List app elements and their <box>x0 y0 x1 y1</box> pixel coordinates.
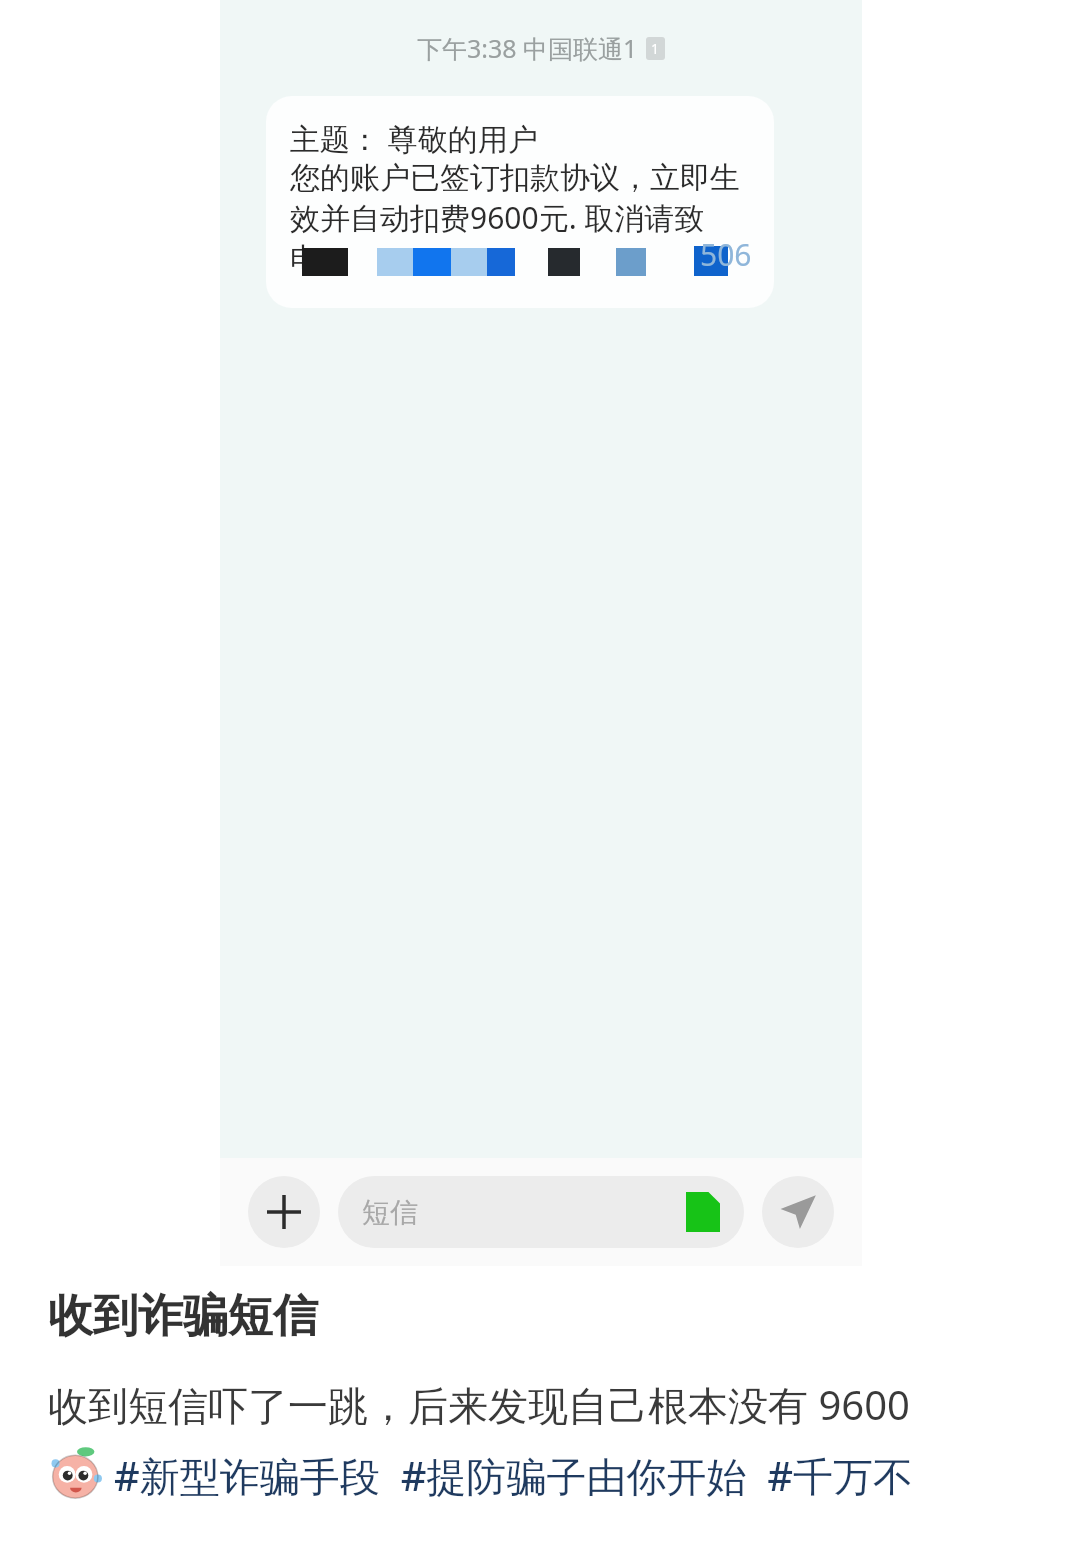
staticText: 506 <box>700 234 752 275</box>
button[interactable]: Send <box>762 1176 834 1248</box>
staticText: 短信 <box>362 1195 418 1230</box>
staticText: 收到诈骗短信 <box>48 1288 318 1345</box>
staticText: 主题： 尊敬的用户 <box>290 118 538 159</box>
staticText: 效并自动扣费9600元. 取消请致 <box>290 197 705 238</box>
button[interactable]: 短信 <box>338 1176 744 1248</box>
button[interactable]: Add attachment <box>248 1176 320 1248</box>
staticText: 收到短信吓了一跳，后来发现自己根本没有 9600 <box>48 1377 910 1432</box>
button[interactable]: 主题： 尊敬的用户 <box>266 96 774 308</box>
staticText: 下午3:38 中国联通1 <box>417 31 638 65</box>
staticText: 您的账户已签订扣款协议，立即生 <box>290 159 740 197</box>
staticText: #新型诈骗手段 #提防骗子由你开始 #千万不 <box>114 1448 914 1503</box>
staticText: 1 <box>651 39 660 58</box>
staticText: 电 <box>290 240 320 278</box>
